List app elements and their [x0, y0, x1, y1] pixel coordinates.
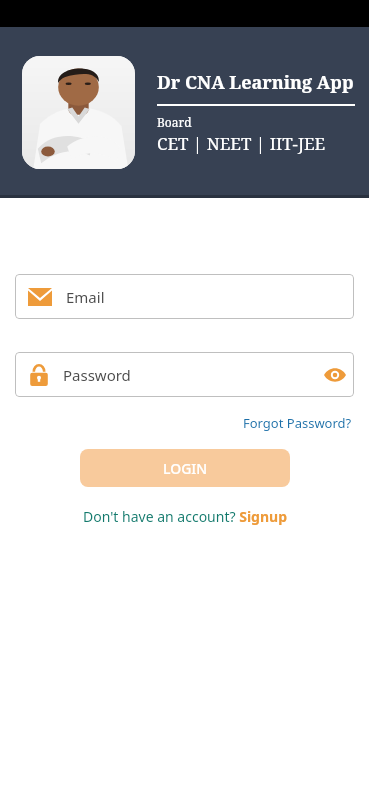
staticText: Dr CNA Learning App — [157, 70, 354, 95]
button[interactable]: Show password — [316, 356, 354, 394]
staticText: LOGIN — [163, 459, 208, 478]
staticText: Password — [63, 365, 316, 385]
staticText: Email — [66, 287, 105, 307]
button[interactable]: Email — [15, 274, 354, 319]
staticText: Don't have an account? Signup — [83, 507, 287, 526]
staticText: CET | NEET | IIT-JEE — [157, 132, 326, 155]
button[interactable]: Password — [15, 352, 354, 397]
staticText: Board — [157, 114, 192, 130]
button[interactable]: Forgot Password? — [241, 412, 354, 434]
staticText: Forgot Password? — [243, 414, 352, 432]
button[interactable]: LOGIN — [80, 449, 290, 487]
button[interactable]: Don't have an account? Signup — [81, 505, 289, 528]
